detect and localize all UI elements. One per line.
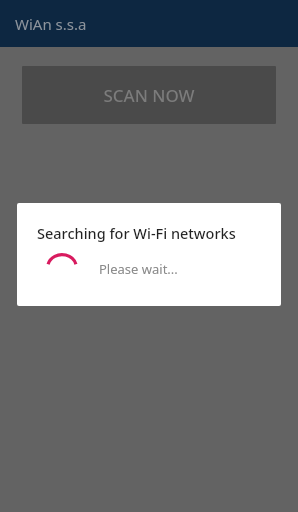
staticText: WiAn s.s.a	[15, 14, 87, 34]
staticText: Please wait...	[99, 260, 178, 278]
staticText: SCAN NOW	[103, 84, 195, 107]
staticText: Searching for Wi-Fi networks	[37, 223, 236, 243]
button[interactable]: SCAN NOW	[22, 66, 276, 124]
